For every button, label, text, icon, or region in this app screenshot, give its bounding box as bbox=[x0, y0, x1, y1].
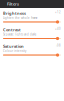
staticText: +12 bbox=[55, 10, 61, 14]
staticText: Filters bbox=[7, 1, 19, 7]
button[interactable]: Contrast bbox=[3, 26, 61, 41]
staticText: Saturation bbox=[3, 44, 24, 49]
staticText: Lighten the whole frame bbox=[3, 16, 38, 20]
button[interactable]: Saturation bbox=[3, 43, 61, 58]
staticText: Colour intensity bbox=[3, 49, 26, 53]
staticText: -08 bbox=[56, 44, 61, 47]
button[interactable]: Brightness bbox=[3, 9, 61, 25]
staticText: Separate lights and darks bbox=[3, 33, 36, 36]
staticText: Contrast bbox=[3, 27, 21, 32]
staticText: +40 bbox=[55, 27, 61, 31]
staticText: Brightness bbox=[3, 10, 26, 16]
